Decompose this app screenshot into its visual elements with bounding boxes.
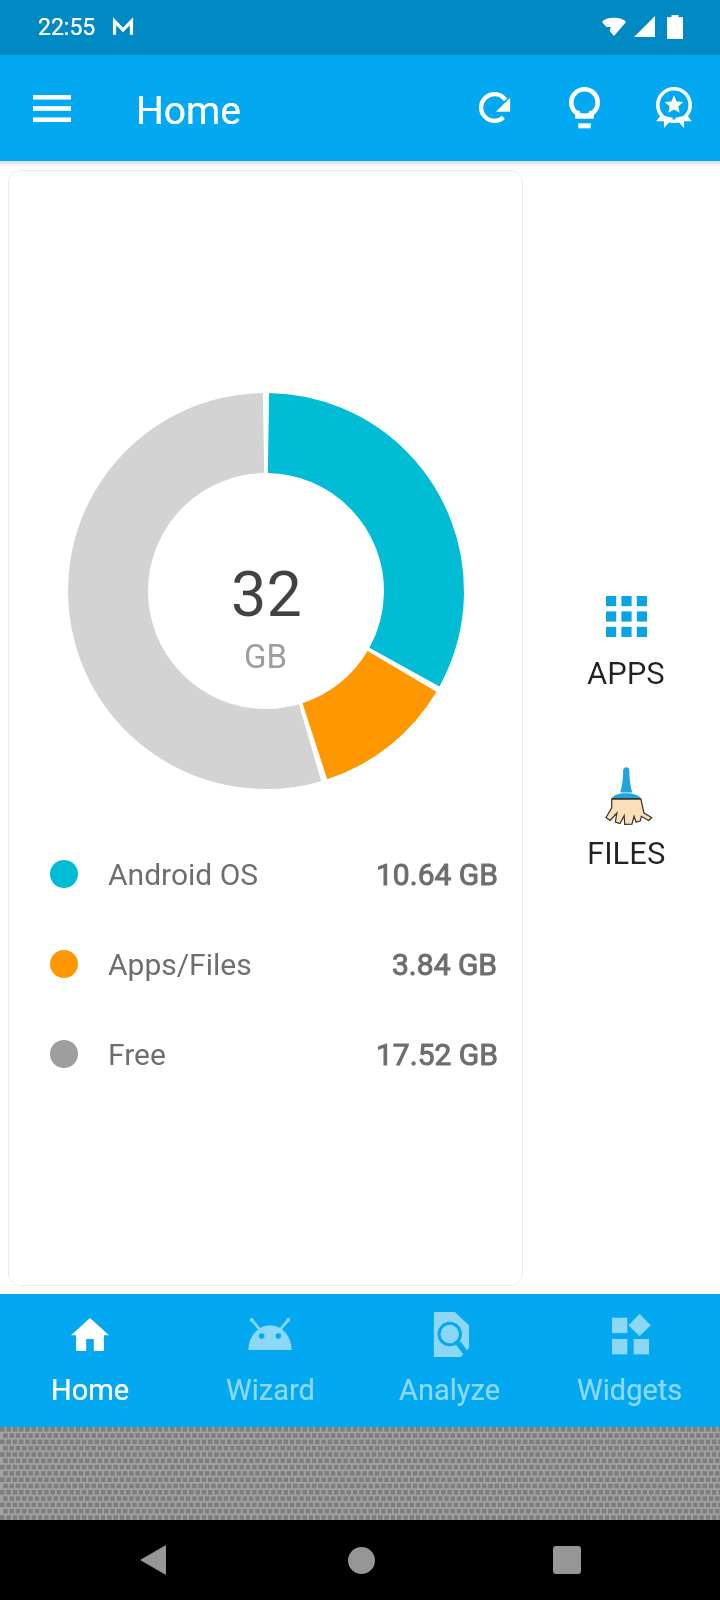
button[interactable]: Refresh xyxy=(449,63,539,153)
staticText: Apps/Files xyxy=(108,947,252,982)
button[interactable]: Apps/Files xyxy=(8,934,523,994)
staticText: Home xyxy=(136,88,241,134)
button[interactable]: Home xyxy=(0,1294,180,1427)
staticText: FILES xyxy=(587,835,666,871)
button[interactable]: Back xyxy=(112,1520,192,1600)
staticText: Free xyxy=(108,1037,166,1072)
staticText: 3.84 GB xyxy=(392,947,498,982)
button[interactable]: APPS xyxy=(557,581,695,721)
button[interactable]: Premium xyxy=(629,63,719,153)
button[interactable]: Navigation menu xyxy=(13,55,91,161)
button[interactable]: Wizard xyxy=(180,1294,360,1427)
staticText: Widgets xyxy=(577,1373,683,1407)
button[interactable]: Widgets xyxy=(540,1294,720,1427)
button[interactable]: Android OS xyxy=(8,844,523,904)
staticText: 22:55 xyxy=(38,14,96,41)
button[interactable]: Analyze xyxy=(360,1294,540,1427)
staticText: 17.52 GB xyxy=(376,1037,498,1072)
button[interactable]: Tips xyxy=(539,63,629,153)
staticText: APPS xyxy=(587,655,665,691)
staticText: Analyze xyxy=(399,1373,501,1407)
staticText: 32 xyxy=(231,558,302,632)
button[interactable]: Free xyxy=(8,1024,523,1084)
button[interactable]: Recent apps xyxy=(527,1520,607,1600)
staticText: 10.64 GB xyxy=(376,857,498,892)
button[interactable]: FILES xyxy=(557,751,695,891)
staticText: Home xyxy=(51,1373,130,1407)
staticText: Wizard xyxy=(226,1373,315,1407)
staticText: Android OS xyxy=(108,857,259,892)
staticText: GB xyxy=(244,637,288,676)
button[interactable]: Home xyxy=(321,1520,401,1600)
